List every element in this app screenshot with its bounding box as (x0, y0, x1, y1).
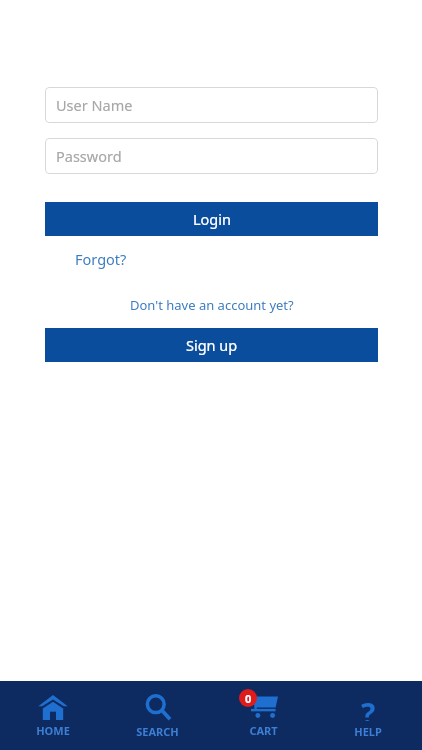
staticText: Password (56, 146, 122, 166)
staticText: HOME (36, 723, 70, 738)
staticText: Forgot? (75, 249, 127, 269)
button[interactable]: Forgot? (75, 247, 127, 271)
button[interactable]: Password (45, 138, 378, 174)
staticText: Don't have an account yet? (130, 296, 294, 314)
button[interactable]: Help (315, 681, 420, 750)
staticText: Login (193, 209, 231, 229)
staticText: 0 (245, 691, 252, 706)
button[interactable]: Home (0, 681, 105, 750)
button[interactable]: Sign up (45, 328, 378, 362)
button[interactable]: User Name (45, 87, 378, 123)
staticText: User Name (56, 95, 133, 115)
staticText: HELP (354, 724, 382, 739)
staticText: CART (249, 723, 278, 738)
button[interactable]: Search (105, 681, 210, 750)
button[interactable]: Login (45, 202, 378, 236)
button[interactable]: Cart (210, 681, 315, 750)
staticText: SEARCH (136, 724, 179, 739)
button[interactable]: Don't have an account yet? (130, 294, 294, 316)
staticText: Sign up (186, 335, 238, 355)
staticText: ? (361, 693, 376, 721)
